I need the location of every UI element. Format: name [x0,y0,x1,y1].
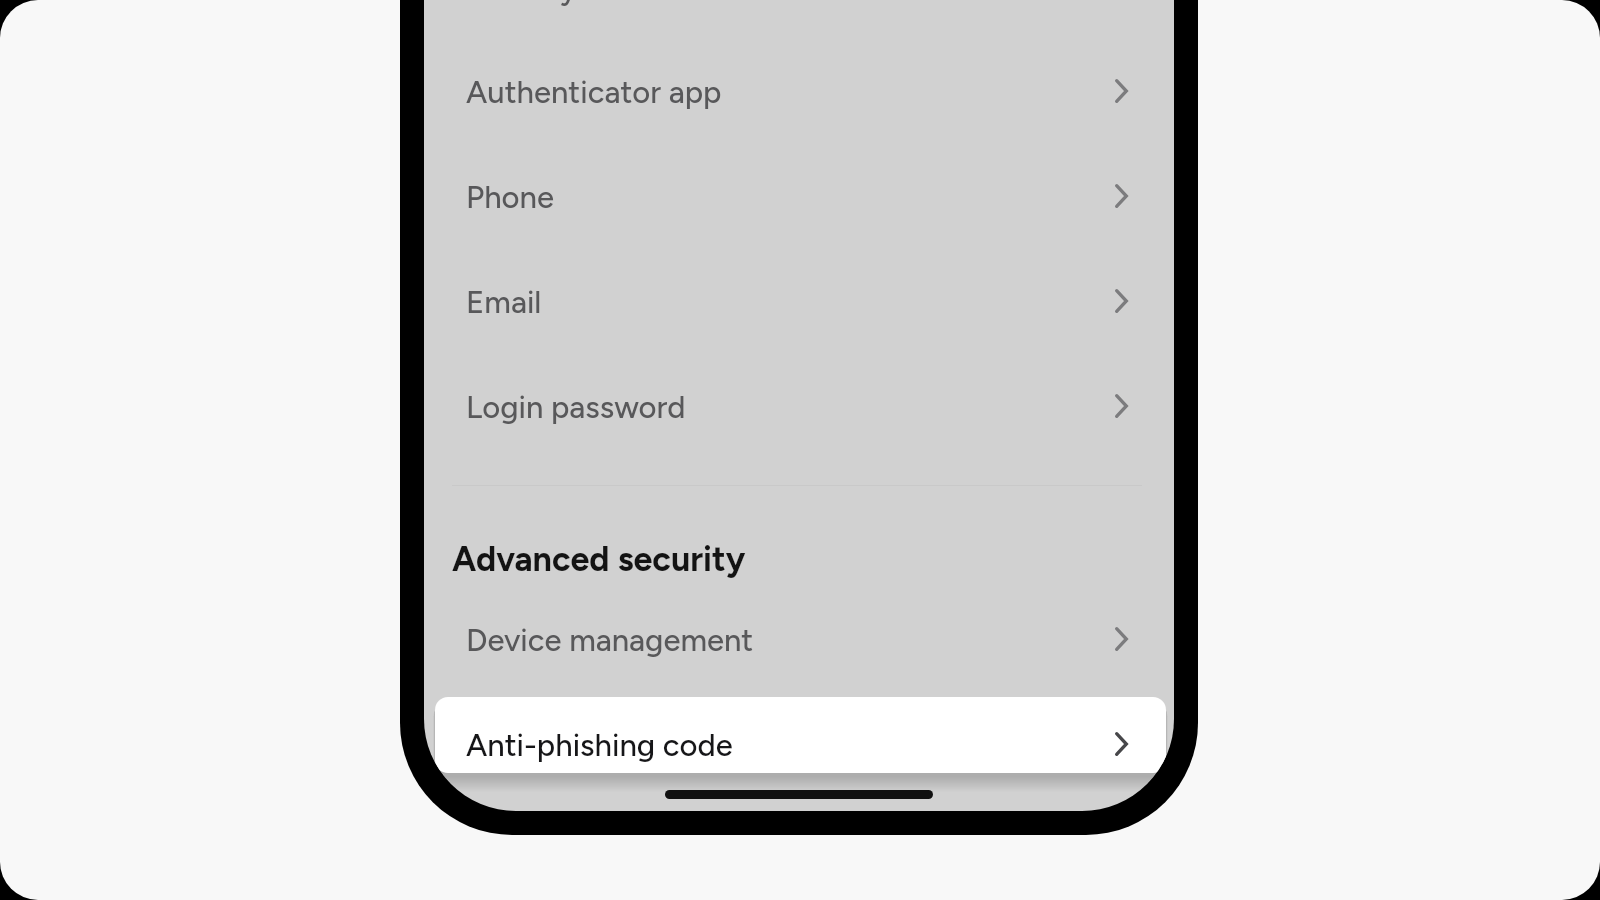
staticText: Phone [466,179,554,216]
button[interactable]: Login password [424,365,1174,470]
other: Open [1115,394,1128,418]
button[interactable]: Device management [424,598,1174,703]
other: Open [1115,79,1128,103]
other: Open [1115,289,1128,313]
button[interactable]: Authenticator app [424,50,1174,155]
staticText: Email [466,284,542,321]
staticText: Anti-phishing code [466,727,733,764]
button[interactable]: Email [424,260,1174,365]
other: Open [1115,184,1128,208]
button[interactable]: Anti-phishing code [435,697,1166,773]
other: Open [1115,732,1128,756]
staticText: Login password [466,389,686,426]
other: Open [1115,627,1128,651]
staticText: Passkeys [466,0,592,8]
staticText: Advanced security [452,539,746,580]
staticText: Authenticator app [466,74,722,111]
staticText: Device management [466,622,754,659]
button[interactable]: Phone [424,155,1174,260]
